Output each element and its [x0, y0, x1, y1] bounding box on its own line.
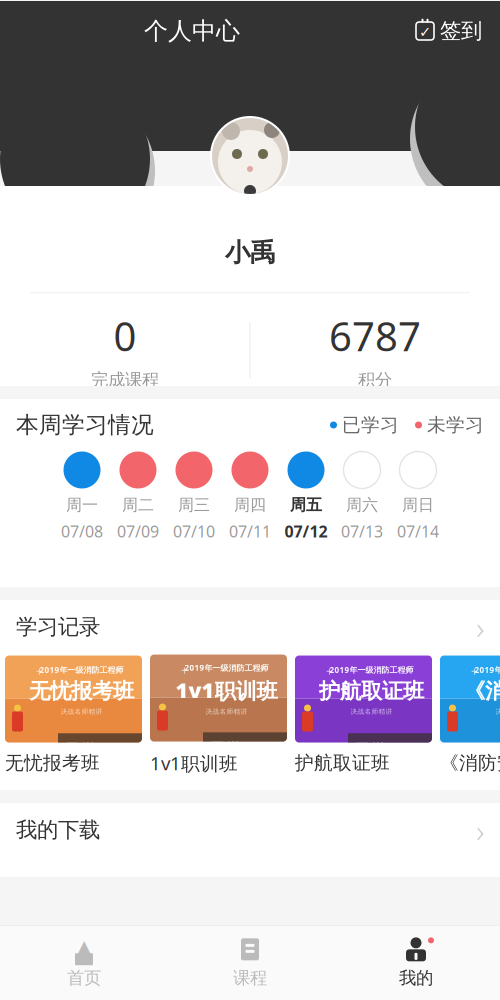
- staticText: 完成课程: [91, 369, 159, 390]
- staticText: +: [36, 663, 43, 679]
- staticText: 决战名师精讲: [495, 707, 500, 716]
- staticText: ✓: [419, 24, 431, 40]
- staticText: 07/13: [341, 521, 383, 542]
- button[interactable]: +: [150, 655, 287, 775]
- staticText: 已学习3%: [210, 737, 280, 758]
- button[interactable]: +: [5, 655, 142, 774]
- staticText: ›: [476, 606, 484, 648]
- staticText: 课程: [233, 967, 267, 989]
- staticText: 2019年一级消防工程师: [39, 664, 123, 675]
- staticText: +: [114, 662, 120, 676]
- staticText: 学习记录: [16, 614, 100, 640]
- staticText: 无忧报考班: [5, 751, 100, 774]
- staticText: +: [181, 662, 188, 678]
- staticText: 07/14: [397, 521, 439, 542]
- staticText: 本周学习情况: [16, 411, 154, 439]
- staticText: 周五: [290, 495, 322, 515]
- staticText: 决战名师精讲: [205, 707, 247, 716]
- staticText: 周一: [66, 495, 98, 515]
- staticText: 我的下载: [16, 817, 100, 843]
- staticText: 0: [113, 309, 136, 362]
- staticText: +: [471, 663, 478, 679]
- staticText: 2019年一级消防工程师: [329, 664, 413, 675]
- staticText: 护航取证班: [319, 678, 424, 704]
- staticText: 07/11: [229, 521, 271, 542]
- button[interactable]: ▲: [1, 926, 167, 1000]
- staticText: 个人中心: [144, 16, 240, 46]
- staticText: 《消防安全: [464, 678, 500, 704]
- staticText: +: [259, 661, 265, 675]
- staticText: 小禹: [225, 237, 275, 268]
- button[interactable]: Profile photo: [211, 117, 289, 195]
- staticText: 签到: [440, 18, 482, 44]
- staticText: 周三: [178, 495, 210, 515]
- staticText: +: [404, 662, 410, 676]
- staticText: 周四: [234, 495, 266, 515]
- staticText: ▲: [77, 936, 90, 956]
- button[interactable]: +: [440, 655, 500, 774]
- staticText: 《消防安全: [440, 751, 500, 774]
- button[interactable]: 我的: [333, 926, 499, 1000]
- staticText: ›: [476, 809, 484, 851]
- staticText: 已学习2%: [65, 738, 135, 759]
- staticText: 6787: [329, 309, 421, 362]
- staticText: 积分: [358, 369, 392, 390]
- staticText: 周二: [122, 495, 154, 515]
- button[interactable]: 我的下载: [0, 803, 500, 857]
- staticText: 2019年一级消防工程师: [474, 664, 500, 675]
- staticText: 决战名师精讲: [60, 707, 102, 716]
- button[interactable]: 课程: [167, 926, 333, 1000]
- staticText: 周六: [346, 495, 378, 515]
- staticText: 周日: [402, 495, 434, 515]
- staticText: 未学习: [427, 413, 484, 436]
- staticText: 首页: [67, 967, 101, 989]
- staticText: 无忧报考班: [29, 678, 134, 704]
- staticText: 1v1职训班: [175, 676, 277, 704]
- staticText: 我的: [399, 967, 433, 989]
- button[interactable]: 学习记录: [0, 600, 500, 654]
- staticText: +: [326, 663, 333, 679]
- staticText: 决战名师精讲: [350, 707, 392, 716]
- staticText: 护航取证班: [295, 751, 390, 774]
- staticText: 07/09: [117, 521, 159, 542]
- button[interactable]: +: [295, 655, 432, 774]
- button[interactable]: ✓: [406, 9, 492, 53]
- staticText: 07/10: [173, 521, 215, 542]
- staticText: 已学习0%: [355, 738, 425, 759]
- staticText: 1v1职训班: [150, 751, 238, 775]
- staticText: 07/08: [61, 521, 103, 542]
- staticText: 已学习: [342, 413, 399, 436]
- staticText: 07/12: [284, 521, 327, 542]
- staticText: 2019年一级消防工程师: [184, 662, 268, 673]
